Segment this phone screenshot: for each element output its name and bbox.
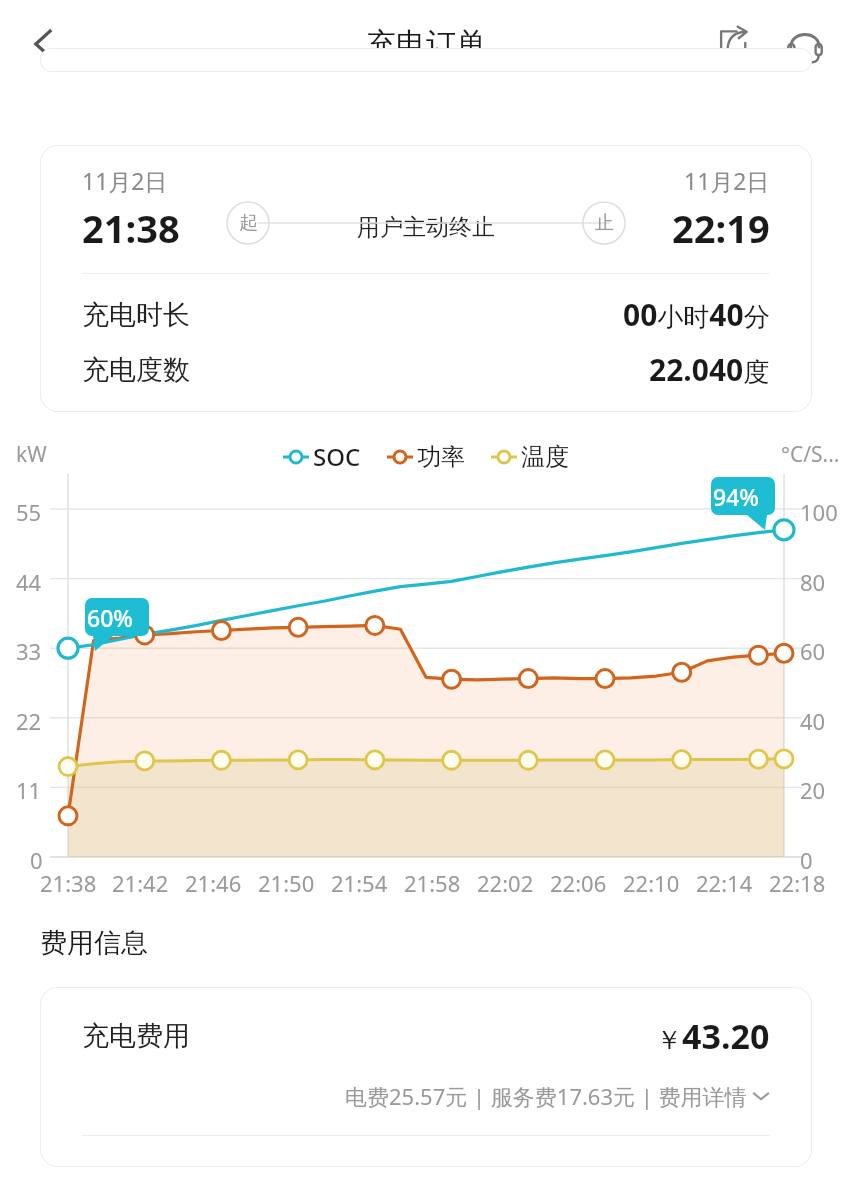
staticText: 33	[16, 636, 42, 666]
staticText: 40	[800, 706, 826, 736]
staticText: 21:38	[82, 202, 180, 254]
staticText: ￥43.20	[656, 1013, 770, 1059]
staticText: 55	[16, 497, 42, 527]
staticText: 22.040度	[649, 349, 770, 390]
staticText: kW	[16, 440, 47, 469]
button[interactable]: 充电费用	[40, 987, 812, 1167]
staticText: 功率	[417, 442, 465, 472]
staticText: 22:10	[623, 868, 680, 898]
staticText: 充电费用	[82, 1019, 190, 1053]
staticText: 0	[30, 845, 43, 875]
staticText: 21:58	[404, 868, 461, 898]
staticText: 充电度数	[82, 353, 190, 387]
staticText: 11	[16, 775, 42, 805]
staticText: 21:54	[331, 868, 388, 898]
staticText: 起	[239, 211, 258, 235]
staticText: 电费25.57元 | 服务费17.63元 | 费用详情	[345, 1081, 747, 1111]
staticText: 充电订单	[366, 25, 486, 63]
staticText: 11月2日	[82, 165, 168, 196]
staticText: °C/S...	[781, 440, 840, 469]
staticText: 60%	[87, 602, 133, 633]
staticText: 费用信息	[40, 926, 148, 960]
staticText: 94%	[713, 481, 759, 512]
staticText: 22:02	[477, 868, 534, 898]
staticText: 00小时40分	[623, 294, 770, 335]
staticText: 11月2日	[684, 165, 770, 196]
staticText: 21:38	[40, 868, 97, 898]
button[interactable]: Back	[14, 14, 74, 74]
button[interactable]: Customer service	[776, 15, 834, 73]
staticText: 80	[800, 567, 826, 597]
staticText: 21:46	[185, 868, 242, 898]
staticText: 20	[800, 775, 826, 805]
staticText: 充电时长	[82, 298, 190, 332]
staticText: 止	[595, 211, 614, 235]
staticText: 21:50	[258, 868, 315, 898]
button[interactable]: Share	[704, 15, 762, 73]
staticText: 22	[16, 706, 42, 736]
staticText: 0	[800, 845, 813, 875]
staticText: SOC	[313, 440, 361, 473]
staticText: 温度	[521, 442, 569, 472]
staticText: 22:14	[696, 868, 753, 898]
staticText: 60	[800, 636, 826, 666]
staticText: 用户主动终止	[357, 213, 495, 242]
staticText: 100	[800, 497, 838, 527]
staticText: 44	[16, 567, 42, 597]
button[interactable]: 电费25.57元 | 服务费17.63元 | 费用详情	[345, 1081, 770, 1111]
staticText: 22:06	[550, 868, 607, 898]
staticText: 22:19	[672, 202, 770, 254]
staticText: 22:18	[769, 868, 826, 898]
staticText: 21:42	[112, 868, 169, 898]
button[interactable]: 11月2日	[40, 145, 812, 412]
